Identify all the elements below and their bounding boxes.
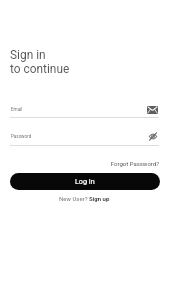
button[interactable]: Password <box>10 129 159 146</box>
staticText: New User? <box>59 195 89 202</box>
button[interactable]: Sign up <box>89 195 110 202</box>
staticText: Log In <box>75 177 95 185</box>
button[interactable]: Log In <box>10 173 160 190</box>
other: Show password <box>149 133 157 140</box>
button[interactable]: Email <box>10 102 159 118</box>
staticText: Password <box>11 134 32 139</box>
other: Email <box>147 106 158 114</box>
staticText: Sign in <box>10 48 46 62</box>
staticText: Forgot Password? <box>110 160 159 167</box>
staticText: to continue <box>10 62 70 76</box>
button[interactable]: Forgot Password? <box>0 157 159 169</box>
staticText: Email <box>11 107 23 112</box>
